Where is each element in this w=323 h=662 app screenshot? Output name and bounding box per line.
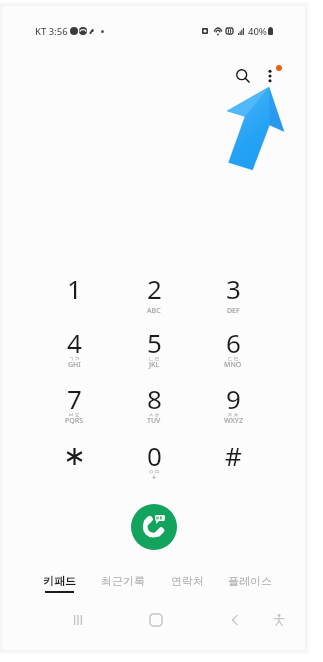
button[interactable]: 7 [44, 381, 104, 433]
staticText: # [225, 438, 242, 473]
staticText: ㅂㅍ [68, 411, 80, 419]
button[interactable]: 연락처 [156, 574, 218, 604]
button[interactable]: Home [143, 607, 169, 633]
staticText: 9 [226, 381, 241, 416]
staticText: KT 3:56 [35, 25, 68, 38]
staticText: 7 [67, 381, 82, 416]
staticText: GHI [68, 360, 81, 370]
staticText: ㄴㄹ [148, 355, 160, 363]
staticText: 연락처 [171, 574, 204, 588]
staticText: ABC [147, 306, 161, 316]
button[interactable]: 4 [44, 325, 104, 377]
staticText: 40% [248, 25, 267, 38]
staticText: ㅅㅎ [148, 411, 160, 419]
staticText: MNO [224, 360, 242, 370]
staticText: 6 [226, 325, 241, 360]
staticText: 0 [147, 438, 162, 473]
button[interactable] [44, 438, 104, 490]
staticText: 4 [67, 325, 82, 360]
staticText: 8 [147, 381, 162, 416]
staticText: PQRS [65, 416, 84, 426]
button[interactable]: 최근기록 [92, 574, 154, 604]
button[interactable]: Recents [65, 607, 91, 633]
button[interactable]: 8 [124, 381, 184, 433]
staticText: ㄷㅌ [227, 355, 239, 363]
staticText: 최근기록 [101, 574, 145, 588]
staticText: 3 [226, 271, 241, 306]
staticText: DEF [227, 306, 240, 316]
button[interactable]: Accessibility [266, 607, 292, 633]
button[interactable]: 플레이스 [219, 574, 281, 604]
staticText: 2 [147, 271, 162, 306]
button[interactable]: Back [222, 607, 248, 633]
staticText: ㅈㅊ [227, 411, 239, 419]
staticText: WXYZ [224, 416, 243, 426]
staticText: 플레이스 [228, 574, 272, 588]
staticText: JKL [149, 360, 160, 370]
staticText: TUV [147, 416, 161, 426]
button[interactable]: More options [254, 60, 286, 92]
staticText: ㄱㅋ [68, 355, 80, 363]
staticText: + [152, 473, 157, 483]
button[interactable]: 6 [203, 325, 263, 377]
staticText: 5 [147, 325, 162, 360]
button[interactable]: 0 [124, 438, 184, 490]
button[interactable]: 3 [203, 271, 263, 323]
button[interactable]: Call [131, 504, 177, 550]
button[interactable]: Search [227, 60, 259, 92]
staticText: 1 [67, 271, 82, 306]
button[interactable]: # [203, 438, 263, 490]
button[interactable]: 키패드 [28, 574, 90, 604]
staticText: ㅇㅁ [148, 468, 160, 476]
staticText: 키패드 [43, 574, 76, 588]
button[interactable]: 2 [124, 271, 184, 323]
button[interactable]: 9 [203, 381, 263, 433]
button[interactable]: 5 [124, 325, 184, 377]
button[interactable]: 1 [44, 271, 104, 323]
